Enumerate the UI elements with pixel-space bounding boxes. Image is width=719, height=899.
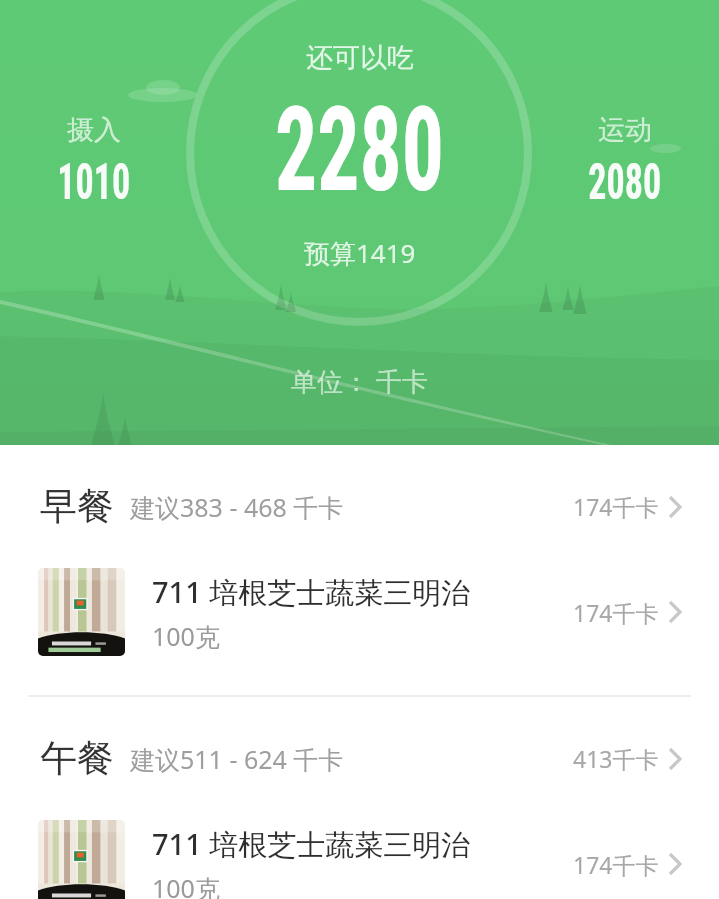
staticText: 100克	[152, 619, 220, 653]
staticText: 建议383 - 468 千卡	[130, 490, 344, 524]
other: More	[664, 743, 686, 775]
staticText: 预算1419	[304, 235, 416, 271]
staticText: 711 培根芝士蔬菜三明治	[152, 824, 471, 864]
other: More	[664, 596, 686, 628]
button[interactable]: 早餐	[0, 445, 719, 568]
button[interactable]: 711 培根芝士蔬菜三明治	[0, 820, 719, 899]
staticText: 还可以吃	[306, 41, 414, 75]
staticText: 单位： 千卡	[291, 363, 428, 399]
staticText: 174千卡	[573, 491, 659, 522]
staticText: 2080	[588, 153, 662, 212]
staticText: 早餐	[40, 483, 114, 530]
staticText: 运动	[598, 113, 652, 147]
staticText: 413千卡	[573, 743, 659, 774]
staticText: 174千卡	[573, 597, 659, 628]
staticText: 174千卡	[573, 849, 659, 880]
staticText: 2280	[275, 82, 444, 218]
staticText: 1010	[57, 153, 131, 212]
button[interactable]: 午餐	[0, 697, 719, 820]
staticText: 100克	[152, 871, 220, 899]
button[interactable]: 711 培根芝士蔬菜三明治	[0, 568, 719, 656]
staticText: 摄入	[67, 113, 121, 147]
staticText: 711 培根芝士蔬菜三明治	[152, 572, 471, 612]
staticText: 午餐	[40, 735, 114, 782]
staticText: 建议511 - 624 千卡	[130, 742, 344, 776]
other: More	[664, 848, 686, 880]
other: More	[664, 491, 686, 523]
